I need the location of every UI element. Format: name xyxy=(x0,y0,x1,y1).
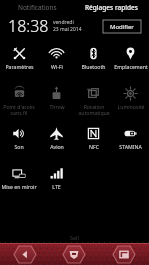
button[interactable]: Son xyxy=(0,121,38,161)
button[interactable]: Back xyxy=(0,243,49,265)
staticText: Avion xyxy=(50,143,64,150)
button[interactable]: Throw xyxy=(38,81,75,121)
staticText: 18:38 xyxy=(8,15,49,37)
button[interactable]: Wi-Fi xyxy=(38,41,75,81)
staticText: Luminosité xyxy=(117,103,145,110)
staticText: Mise en miroir xyxy=(1,183,37,190)
staticText: 23 mai 2014 xyxy=(53,26,82,33)
button[interactable]: STAMINA xyxy=(112,121,149,161)
staticText: Throw xyxy=(49,103,65,110)
button[interactable]: Notifications xyxy=(0,0,74,14)
button[interactable]: Emplacement xyxy=(112,41,149,81)
button[interactable]: Avion xyxy=(38,121,75,161)
staticText: NFC xyxy=(89,143,99,150)
button[interactable]: Mise en miroir xyxy=(0,161,38,201)
staticText: LTE xyxy=(52,183,61,190)
staticText: Bluetooth xyxy=(81,63,106,70)
staticText: Réglages rapides xyxy=(85,3,138,12)
staticText: Modifier xyxy=(110,23,134,31)
button[interactable]: Point d'accès sans fil xyxy=(0,81,38,121)
staticText: Paramètres xyxy=(5,63,34,70)
button[interactable]: Bluetooth xyxy=(75,41,112,81)
button[interactable]: Modifier xyxy=(103,20,141,33)
button[interactable]: Rotation automatique xyxy=(75,81,112,121)
staticText: Emplacement xyxy=(114,63,148,70)
staticText: Sell xyxy=(70,234,79,241)
button[interactable]: Paramètres xyxy=(0,41,38,81)
button[interactable]: Home xyxy=(49,243,99,265)
staticText: Son xyxy=(14,143,24,150)
staticText: Wi-Fi xyxy=(51,63,63,70)
staticText: vendredi xyxy=(53,19,74,26)
button[interactable]: Réglages rapides xyxy=(74,0,149,14)
button[interactable]: NFC xyxy=(75,121,112,161)
staticText: Point d'accès sans fil xyxy=(3,103,35,116)
staticText: Notifications xyxy=(18,3,57,12)
button[interactable]: Luminosité xyxy=(112,81,149,121)
button[interactable]: Recents xyxy=(99,243,149,265)
staticText: STAMINA xyxy=(119,143,142,150)
button[interactable]: LTE xyxy=(38,161,75,201)
staticText: Rotation automatique xyxy=(78,103,110,116)
